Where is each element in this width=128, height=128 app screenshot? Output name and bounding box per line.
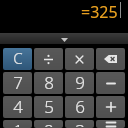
button[interactable]: Plus: [96, 96, 125, 118]
button[interactable]: 3: [65, 120, 94, 128]
button[interactable]: 1: [3, 120, 32, 128]
staticText: 9: [75, 72, 85, 93]
button[interactable]: 8: [34, 72, 63, 94]
staticText: =325: [81, 1, 118, 23]
button[interactable]: Equals: [96, 120, 125, 128]
staticText: 3: [75, 120, 85, 127]
staticText: C: [13, 48, 23, 68]
button[interactable]: 5: [34, 96, 63, 118]
staticText: 2: [44, 120, 54, 127]
staticText: 6: [75, 96, 85, 117]
button[interactable]: 4: [3, 96, 32, 118]
button[interactable]: 7: [3, 72, 32, 94]
button[interactable]: Minus: [96, 72, 125, 94]
staticText: 1: [13, 120, 23, 127]
staticText: 5: [44, 96, 54, 117]
button[interactable]: C: [3, 48, 32, 70]
button[interactable]: Backspace: [96, 48, 125, 70]
staticText: 8: [44, 72, 54, 93]
button[interactable]: Multiply: [65, 48, 94, 70]
button[interactable]: 2: [34, 120, 63, 128]
staticText: 7: [13, 72, 23, 93]
button[interactable]: 9: [65, 72, 94, 94]
button[interactable]: Divide: [34, 48, 63, 70]
staticText: 4: [13, 96, 23, 117]
button[interactable]: 6: [65, 96, 94, 118]
